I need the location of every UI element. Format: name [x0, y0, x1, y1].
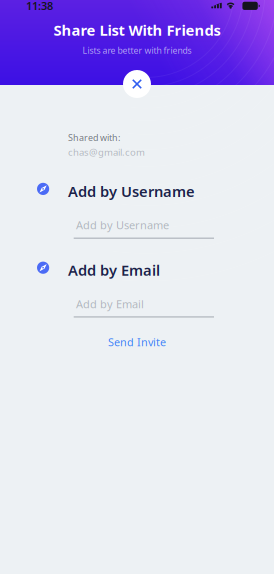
staticText: Add by Username — [76, 218, 169, 233]
staticText: Add by Username — [68, 181, 195, 201]
staticText: Lists are better with friends — [82, 44, 191, 56]
staticText: Add by Email — [68, 260, 160, 280]
button[interactable]: Add by Username — [37, 183, 49, 195]
button[interactable]: Close — [123, 70, 151, 98]
staticText: Send Invite — [108, 335, 166, 349]
staticText: Add by Email — [76, 296, 144, 311]
button[interactable]: Add by Email — [37, 262, 49, 274]
staticText: 11:38 — [26, 0, 53, 13]
staticText: chas@gmail.com — [68, 146, 145, 159]
button[interactable]: Send Invite — [108, 335, 166, 349]
staticText: Share List With Friends — [53, 20, 220, 40]
staticText: Shared with: — [68, 131, 120, 144]
